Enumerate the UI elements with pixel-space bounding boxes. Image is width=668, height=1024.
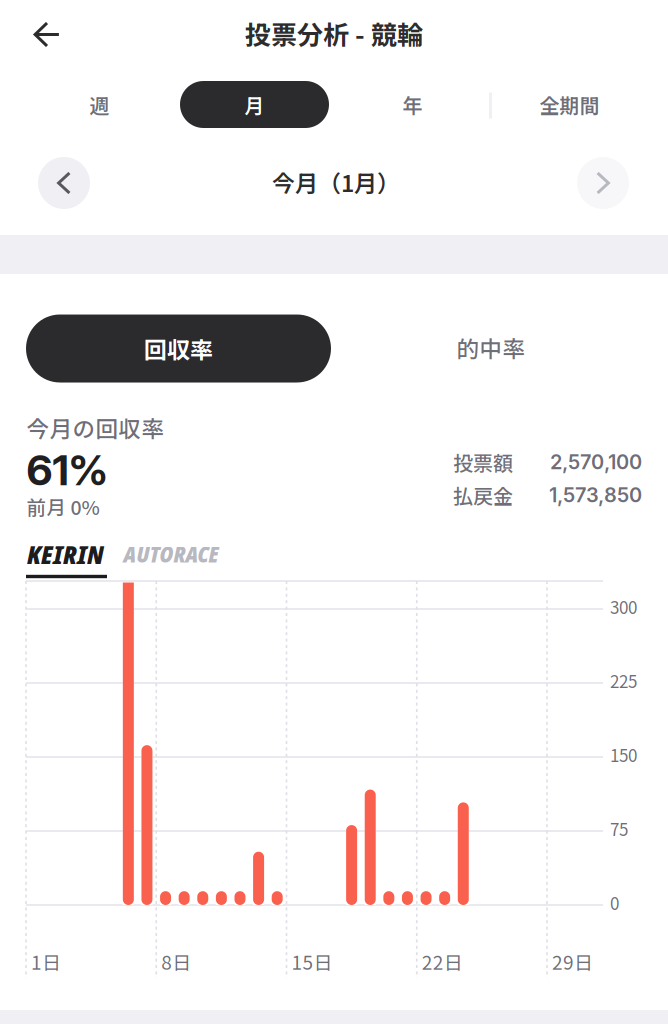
staticText: 0 [610,890,619,915]
staticText: 投票額 [453,447,513,476]
staticText: 回収率 [144,332,213,365]
staticText: 225 [610,668,637,693]
button[interactable]: Back [17,8,77,60]
staticText: 22日 [422,948,463,975]
staticText: 8日 [161,948,191,975]
staticText: AUTORACE [123,539,218,569]
button[interactable]: Previous month [38,157,90,209]
staticText: 的中率 [456,331,525,364]
button[interactable]: AUTORACE [123,539,218,569]
staticText: 前月 0% [26,492,99,521]
staticText: 61% [26,445,107,495]
button[interactable]: Next month [577,157,629,209]
staticText: 今月の回収率 [26,411,164,444]
button[interactable]: KEIRIN [27,537,104,571]
staticText: 払戻金 [453,480,513,509]
button[interactable]: 週 [34,80,164,128]
staticText: 75 [610,816,628,841]
staticText: 1,573,850 [549,483,642,507]
staticText: 150 [610,742,637,767]
staticText: 年 [402,90,422,119]
staticText: 300 [610,594,637,619]
staticText: 29日 [552,948,593,975]
staticText: 15日 [291,948,332,975]
staticText: 月 [244,90,264,119]
staticText: 週 [89,90,109,119]
button[interactable]: 的中率 [391,312,591,382]
button[interactable]: 全期間 [494,80,644,128]
staticText: 投票分析 - 競輪 [245,15,423,52]
button[interactable]: 月 [180,81,329,128]
staticText: 今月（1月） [272,165,400,199]
staticText: 1日 [31,948,61,975]
staticText: KEIRIN [27,537,104,571]
staticText: 2,570,100 [550,450,642,474]
button[interactable]: 回収率 [26,314,331,382]
button[interactable]: 年 [357,80,467,128]
staticText: 全期間 [539,90,599,119]
